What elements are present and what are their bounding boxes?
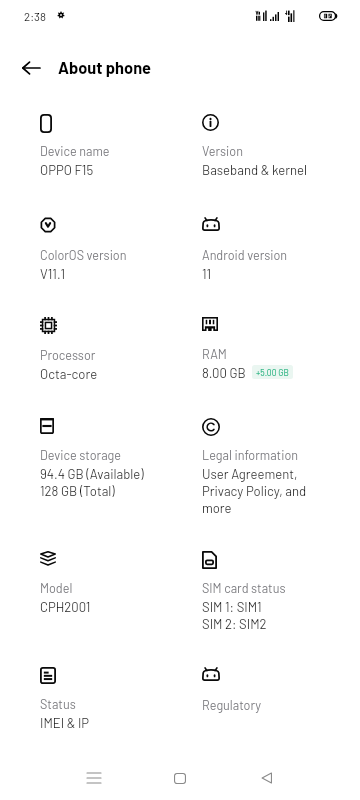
staticText: SIM 1: SIM1: [202, 599, 262, 615]
staticText: About phone: [58, 58, 151, 78]
button[interactable]: Home: [159, 756, 201, 800]
button[interactable]: Device name: [28, 106, 184, 186]
staticText: CPH2001: [40, 599, 91, 615]
button[interactable]: Android version: [190, 209, 346, 290]
button[interactable]: Regulatory: [190, 659, 346, 724]
staticText: Legal information: [202, 447, 299, 462]
button[interactable]: Processor: [28, 309, 184, 390]
staticText: Version: [202, 143, 243, 158]
staticText: SIM 2: SIM2: [202, 616, 267, 632]
staticText: Android version: [202, 247, 288, 262]
staticText: RAM: [202, 346, 227, 361]
button[interactable]: ColorOS version: [28, 209, 184, 290]
button[interactable]: SIM card status: [190, 543, 346, 640]
staticText: OPPO F15: [40, 162, 94, 178]
staticText: V11.1: [40, 266, 66, 282]
staticText: +5.00 GB: [256, 367, 289, 377]
button[interactable]: Back: [10, 47, 52, 89]
button[interactable]: RAM: [190, 309, 346, 389]
staticText: 128 GB (Total): [40, 483, 115, 499]
button[interactable]: Recent apps: [73, 756, 115, 800]
staticText: Device name: [40, 143, 110, 158]
button[interactable]: Status: [28, 659, 184, 739]
button[interactable]: Legal information: [190, 410, 346, 524]
staticText: Model: [40, 580, 73, 595]
staticText: IMEI & IP: [40, 715, 90, 731]
staticText: 8.00 GB: [202, 365, 246, 381]
staticText: Baseband & kernel: [202, 162, 307, 178]
staticText: 2:38: [24, 9, 46, 23]
staticText: Status: [40, 696, 76, 711]
button[interactable]: Device storage: [28, 410, 184, 507]
staticText: Privacy Policy, and: [202, 483, 307, 499]
staticText: 11: [202, 266, 212, 282]
staticText: User Agreement,: [202, 466, 298, 482]
button[interactable]: Model: [28, 543, 184, 623]
staticText: Device storage: [40, 447, 122, 462]
staticText: ColorOS version: [40, 247, 127, 262]
staticText: more: [202, 500, 232, 516]
button[interactable]: Back: [245, 756, 287, 800]
staticText: Processor: [40, 347, 96, 362]
staticText: SIM card status: [202, 580, 286, 595]
button[interactable]: Version: [190, 106, 346, 186]
staticText: Octa-core: [40, 366, 98, 382]
staticText: Regulatory: [202, 697, 262, 712]
staticText: 94.4 GB (Available): [40, 466, 144, 482]
